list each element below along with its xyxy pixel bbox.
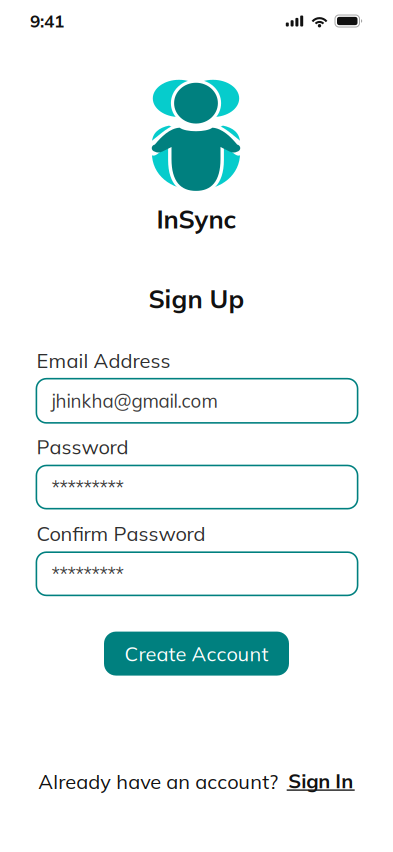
staticText: Confirm Password [36,521,205,546]
staticText: Email Address [36,348,170,373]
staticText: Create Account [124,641,268,666]
staticText: Already have an account? [38,769,278,794]
staticText: Password [36,434,128,459]
staticText: Sign In [288,768,353,793]
staticText: Sign Up [148,283,244,315]
staticText: jhinkha@gmail.com [51,389,217,412]
staticText: ********* [51,475,123,499]
staticText: ********* [51,562,123,585]
staticText: 9:41 [30,10,64,32]
staticText: InSync [156,203,236,235]
button[interactable]: Already have an account? [38,764,355,799]
button[interactable]: Create Account [104,632,289,676]
